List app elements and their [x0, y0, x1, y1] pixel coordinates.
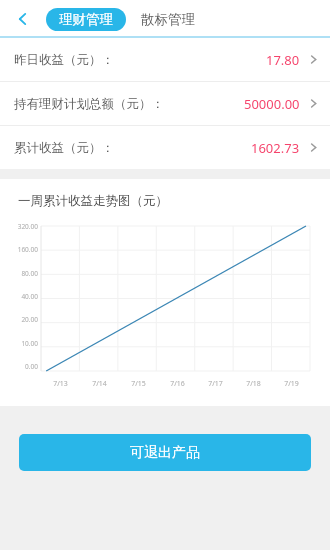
staticText: 7/17 [208, 379, 223, 389]
button[interactable]: 理财管理 [46, 8, 126, 31]
staticText: 1602.73 [251, 139, 300, 157]
button[interactable]: 昨日收益（元）： [0, 38, 330, 81]
button[interactable]: 散标管理 [137, 8, 199, 31]
staticText: 10.00 [21, 339, 38, 348]
staticText: 持有理财计划总额（元）： [14, 96, 164, 112]
staticText: 320.00 [17, 222, 38, 231]
staticText: 7/19 [284, 379, 299, 389]
button[interactable]: Back [0, 0, 46, 38]
staticText: 160.00 [17, 245, 38, 254]
staticText: 昨日收益（元）： [14, 52, 114, 68]
staticText: 7/13 [53, 379, 68, 389]
staticText: 20.00 [21, 315, 38, 324]
staticText: 理财管理 [59, 11, 113, 28]
staticText: 17.80 [266, 51, 300, 69]
staticText: 散标管理 [141, 11, 195, 28]
staticText: 一周累计收益走势图（元） [18, 193, 168, 209]
staticText: 0.00 [25, 362, 38, 371]
staticText: 40.00 [21, 292, 38, 301]
button[interactable]: 持有理财计划总额（元）： [0, 82, 330, 125]
staticText: 7/14 [92, 379, 107, 389]
staticText: 7/16 [170, 379, 185, 389]
staticText: 累计收益（元）： [14, 140, 114, 156]
staticText: 7/15 [131, 379, 146, 389]
button[interactable]: 累计收益（元）： [0, 126, 330, 169]
staticText: 7/18 [246, 379, 261, 389]
staticText: 可退出产品 [130, 444, 200, 462]
staticText: 50000.00 [244, 95, 300, 113]
staticText: 80.00 [21, 269, 38, 278]
button[interactable]: 可退出产品 [19, 434, 311, 471]
